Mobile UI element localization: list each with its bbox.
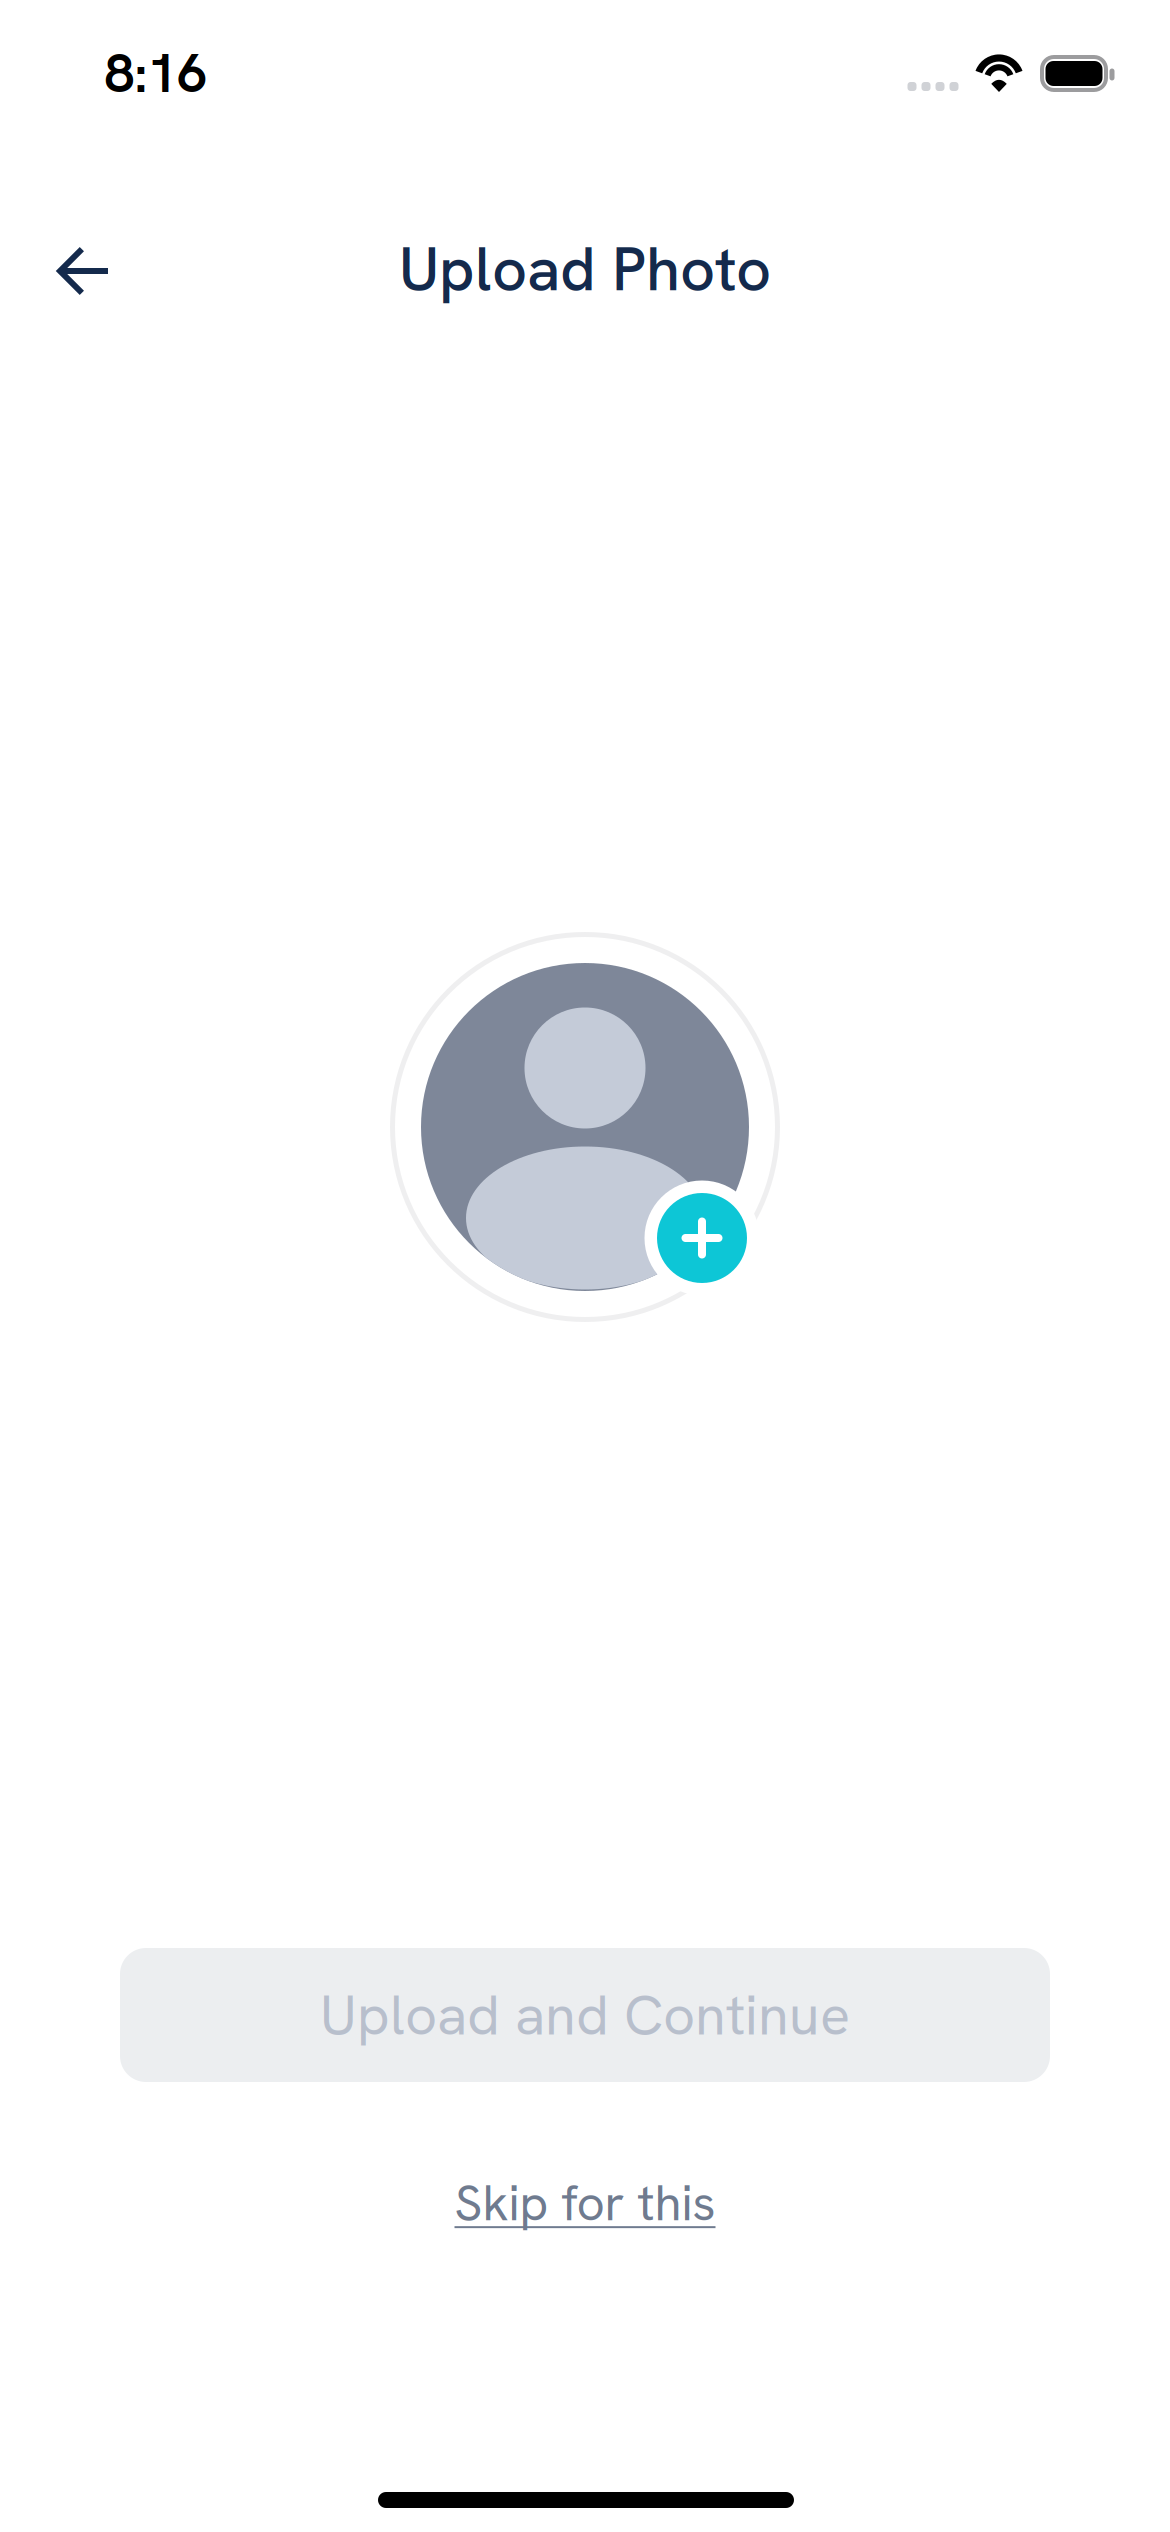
staticText: Skip for this xyxy=(454,2171,715,2235)
button[interactable]: Skip for this xyxy=(436,2153,733,2253)
button[interactable]: Add photo xyxy=(385,927,785,1327)
staticText: Upload Photo xyxy=(399,229,771,309)
button[interactable]: Upload and Continue xyxy=(120,1948,1050,2082)
staticText: Upload and Continue xyxy=(320,1978,850,2051)
button[interactable]: Back xyxy=(24,211,144,331)
staticText: 8:16 xyxy=(104,39,207,108)
